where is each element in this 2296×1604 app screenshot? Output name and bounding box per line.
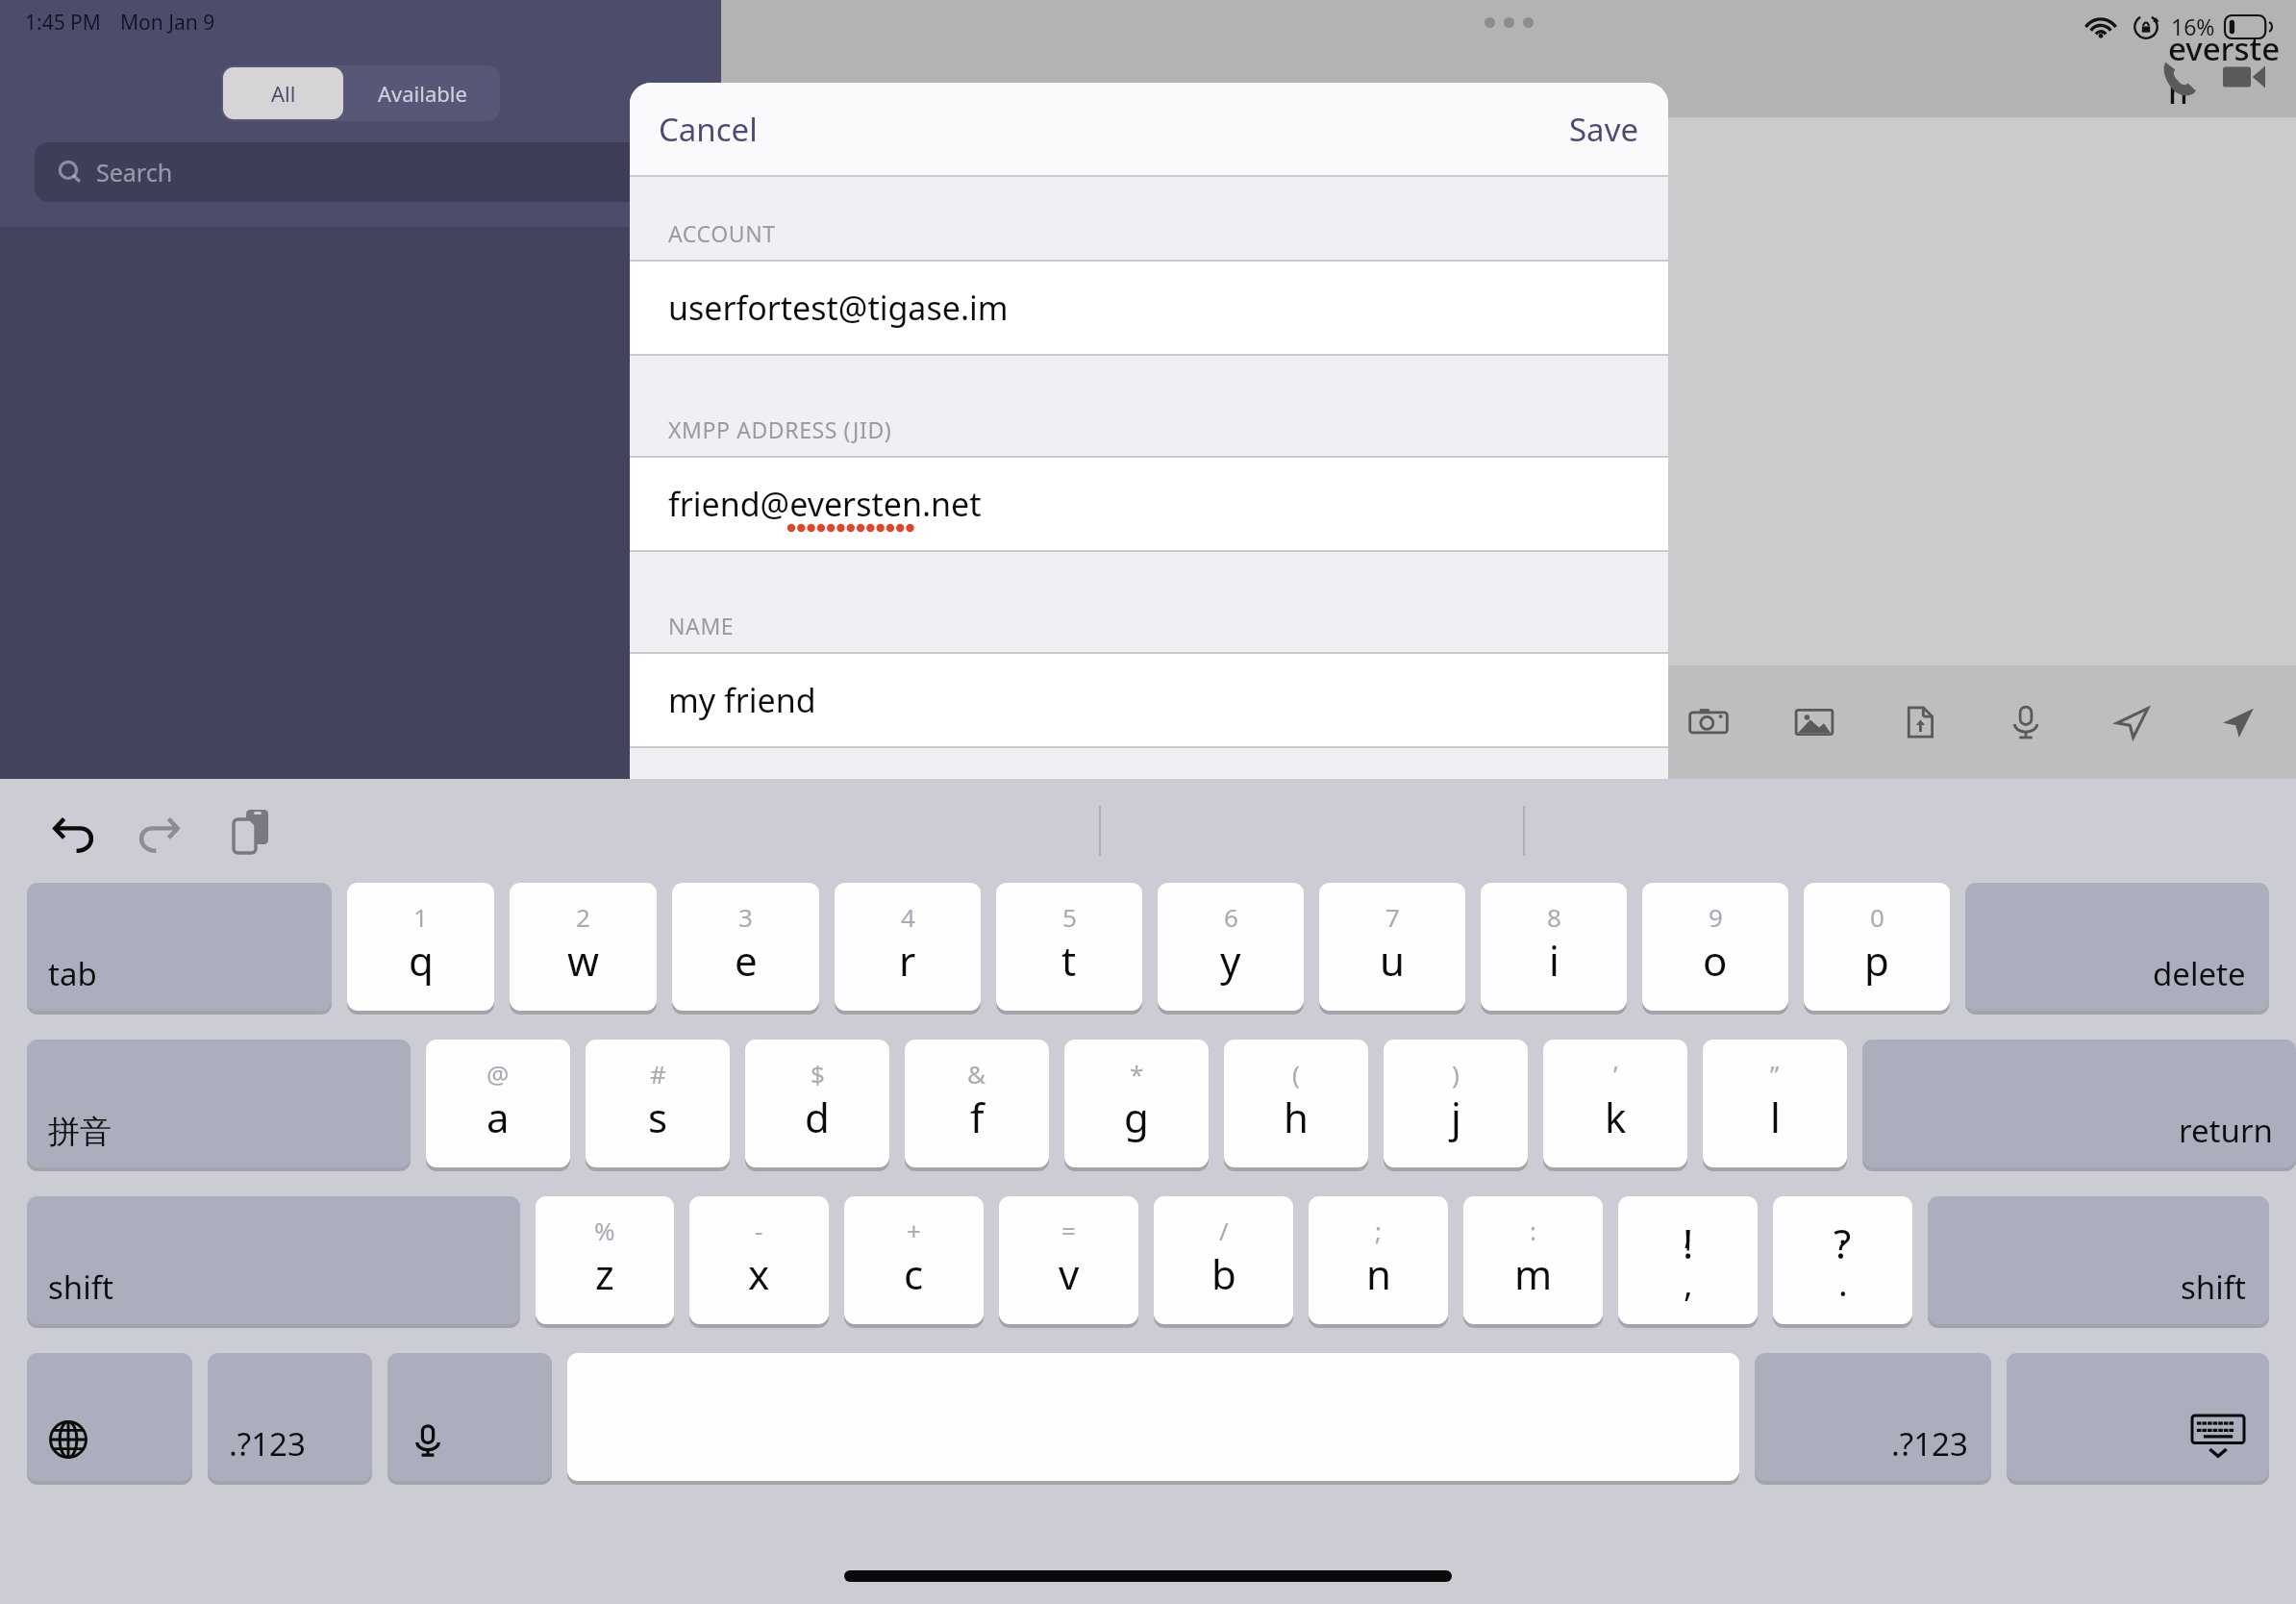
staticText: -: [755, 1214, 763, 1247]
staticText: y: [1220, 933, 1241, 988]
button[interactable]: shift: [27, 1196, 520, 1324]
button[interactable]: ): [1384, 1040, 1528, 1167]
button[interactable]: ;: [1309, 1196, 1448, 1324]
button[interactable]: Search: [35, 142, 696, 202]
button[interactable]: ,: [1618, 1196, 1758, 1324]
button[interactable]: .?123: [208, 1353, 372, 1481]
staticText: p: [1864, 933, 1889, 988]
button[interactable]: tab: [27, 883, 332, 1011]
button[interactable]: :: [1463, 1196, 1603, 1324]
button[interactable]: -: [689, 1196, 829, 1324]
button[interactable]: 5: [996, 883, 1142, 1011]
staticText: 拼音: [48, 1112, 112, 1152]
button[interactable]: 9: [1642, 883, 1788, 1011]
button[interactable]: .?123: [1755, 1353, 1991, 1481]
staticText: All: [271, 79, 296, 108]
button[interactable]: %: [536, 1196, 674, 1324]
staticText: @: [487, 1057, 510, 1090]
button[interactable]: @: [426, 1040, 570, 1167]
button[interactable]: Voice message: [2000, 696, 2052, 748]
staticText: Mon Jan 9: [120, 9, 215, 37]
staticText: l: [1770, 1090, 1781, 1144]
button[interactable]: Voice call: [2152, 50, 2206, 104]
button[interactable]: +: [844, 1196, 984, 1324]
button[interactable]: delete: [1965, 883, 2269, 1011]
button[interactable]: #: [586, 1040, 730, 1167]
button[interactable]: ”: [1703, 1040, 1847, 1167]
staticText: v: [1059, 1246, 1080, 1301]
button[interactable]: Camera: [1683, 696, 1734, 748]
button[interactable]: Back: [1461, 77, 1494, 110]
button[interactable]: (: [1224, 1040, 1368, 1167]
staticText: f: [970, 1090, 985, 1144]
button[interactable]: 0: [1804, 883, 1950, 1011]
staticText: i: [1549, 933, 1560, 988]
button[interactable]: /: [1154, 1196, 1293, 1324]
staticText: NAME: [668, 611, 735, 640]
button[interactable]: ’: [1543, 1040, 1687, 1167]
staticText: my friend: [668, 678, 816, 722]
button[interactable]: Hide keyboard: [2007, 1353, 2269, 1481]
button[interactable]: 2: [510, 883, 657, 1011]
button[interactable]: userfortest@tigase.im: [630, 262, 1668, 354]
button[interactable]: Cancel: [659, 108, 758, 151]
button[interactable]: $: [745, 1040, 889, 1167]
button[interactable]: Paste: [217, 795, 288, 866]
staticText: 3: [738, 900, 753, 934]
staticText: delete: [2153, 952, 2246, 995]
staticText: ;: [1375, 1214, 1382, 1247]
button[interactable]: 拼音: [27, 1040, 411, 1167]
staticText: userfortest@tigase.im: [668, 286, 1009, 330]
button[interactable]: 6: [1158, 883, 1304, 1011]
staticText: shift: [48, 1266, 113, 1309]
staticText: 8: [1547, 900, 1561, 934]
staticText: q: [409, 933, 434, 988]
staticText: .?123: [1891, 1422, 1968, 1466]
staticText: n: [1366, 1246, 1391, 1301]
button[interactable]: *: [1064, 1040, 1209, 1167]
button[interactable]: Undo: [38, 795, 110, 866]
button[interactable]: my friend: [630, 654, 1668, 746]
staticText: .: [1838, 1210, 1848, 1254]
staticText: u: [1380, 933, 1405, 988]
button[interactable]: Change keyboard: [27, 1353, 192, 1481]
button[interactable]: &: [905, 1040, 1049, 1167]
button[interactable]: shift: [1928, 1196, 2269, 1324]
staticText: h: [1284, 1090, 1309, 1144]
button[interactable]: Photo library: [1788, 696, 1840, 748]
staticText: Cancel: [659, 108, 758, 151]
button[interactable]: return: [1862, 1040, 2296, 1167]
staticText: w: [567, 933, 600, 988]
staticText: eversten: [2168, 27, 2296, 113]
button[interactable]: Video call: [2217, 50, 2271, 104]
button[interactable]: Multitasking options: [1485, 17, 1534, 28]
button[interactable]: 7: [1319, 883, 1465, 1011]
staticText: &: [967, 1057, 986, 1090]
staticText: x: [748, 1246, 770, 1301]
button[interactable]: 3: [672, 883, 819, 1011]
button[interactable]: [567, 1353, 1739, 1481]
staticText: $: [811, 1057, 825, 1090]
staticText: .: [1838, 1260, 1848, 1307]
staticText: r: [899, 933, 916, 988]
button[interactable]: 4: [835, 883, 981, 1011]
button[interactable]: =: [999, 1196, 1138, 1324]
button[interactable]: Share location: [2106, 696, 2158, 748]
button[interactable]: 8: [1481, 883, 1627, 1011]
button[interactable]: friend@eversten.net: [630, 458, 1668, 550]
staticText: 1:45 PM: [25, 9, 101, 37]
staticText: 6: [1224, 900, 1238, 934]
staticText: e: [735, 933, 758, 988]
staticText: 16%: [2171, 12, 2215, 41]
button[interactable]: Dictation: [387, 1353, 552, 1481]
staticText: =: [1061, 1214, 1076, 1247]
staticText: %: [594, 1214, 615, 1247]
button[interactable]: All: [223, 67, 343, 119]
button[interactable]: 1: [347, 883, 494, 1011]
button[interactable]: Redo: [123, 795, 194, 866]
button[interactable]: Attach file: [1894, 696, 1946, 748]
button[interactable]: Send: [2211, 696, 2263, 748]
button[interactable]: Available: [345, 65, 500, 121]
button[interactable]: Save: [1569, 108, 1639, 151]
button[interactable]: .: [1773, 1196, 1912, 1324]
